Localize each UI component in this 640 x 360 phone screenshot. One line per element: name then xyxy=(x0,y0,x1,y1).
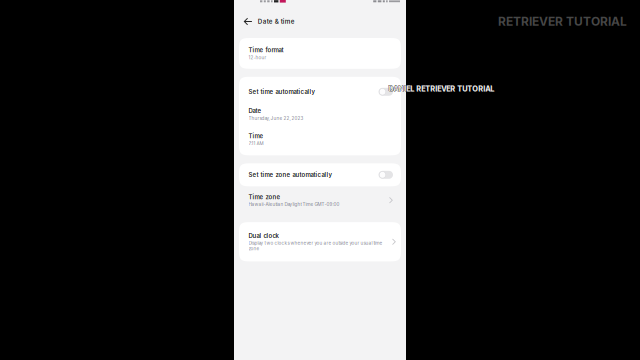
staticText: DANIEL RETRIEVER TUTORIAL xyxy=(388,84,494,93)
staticText: Set time automatically xyxy=(248,88,315,95)
button[interactable]: Set time automatically xyxy=(239,77,401,102)
staticText: Date & time xyxy=(258,18,295,25)
staticText: Thursday, June 22, 2023 xyxy=(248,115,303,121)
button[interactable]: Time zone xyxy=(239,186,401,214)
staticText: DANIEL RETRIEVER TUTORIAL xyxy=(389,85,495,94)
staticText: Set time zone automatically xyxy=(248,171,332,178)
staticText: Dual clock xyxy=(248,232,278,239)
button[interactable]: Back xyxy=(234,12,258,31)
staticText: 12-hour xyxy=(248,55,266,60)
button[interactable]: Time format xyxy=(239,38,401,69)
staticText: Time xyxy=(248,133,263,140)
staticText: DANIEL RETRIEVER TUTORIAL xyxy=(388,84,494,93)
staticText: Hawaii-Aleutian Daylight Time GMT-09:00 xyxy=(248,202,339,207)
button[interactable]: Time xyxy=(239,127,401,155)
staticText: Time zone xyxy=(248,193,280,201)
button[interactable]: Dual clock xyxy=(239,222,401,261)
button[interactable]: Set time zone automatically xyxy=(239,163,401,186)
staticText: 7:11 AM xyxy=(248,141,263,146)
staticText: Date xyxy=(248,107,261,115)
staticText: Time format xyxy=(248,46,283,54)
button[interactable]: Date xyxy=(239,102,401,127)
staticText: RETRIEVER TUTORIAL xyxy=(498,14,627,28)
staticText: Display two clocks whenever you are outs… xyxy=(248,240,382,251)
